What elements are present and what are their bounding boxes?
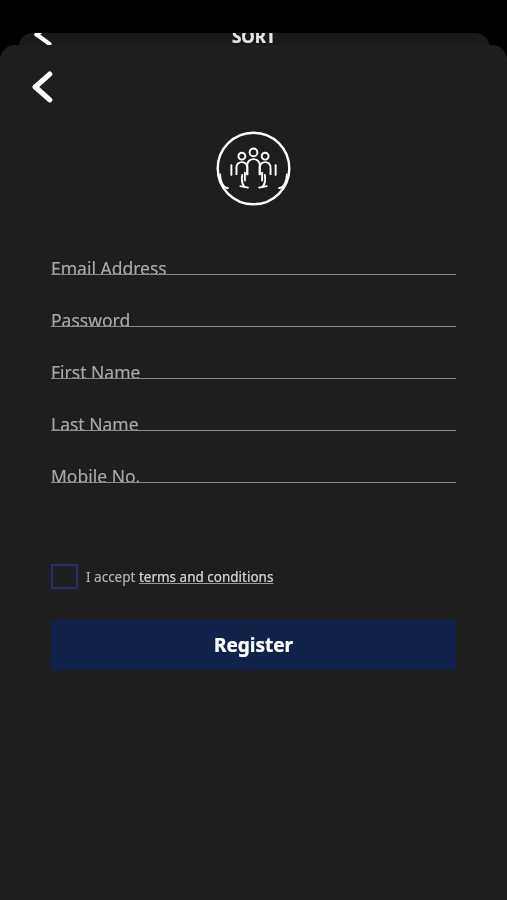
staticText: Password [51,308,131,332]
button[interactable]: Mobile No. [0,453,507,505]
staticText: I accept terms and conditions [86,568,274,586]
staticText: First Name [51,360,141,384]
staticText: Last Name [51,412,139,436]
staticText: Email Address [51,256,167,280]
button[interactable]: Email Address [0,245,507,297]
button[interactable]: First Name [0,349,507,401]
staticText: Register [214,632,294,658]
button[interactable]: Register [51,620,456,670]
staticText: SORT [232,33,276,48]
button[interactable]: Back [18,63,66,111]
staticText: Mobile No. [51,464,141,488]
button[interactable]: I accept terms and conditions [51,564,274,589]
button[interactable]: Last Name [0,401,507,453]
button[interactable]: Password [0,297,507,349]
